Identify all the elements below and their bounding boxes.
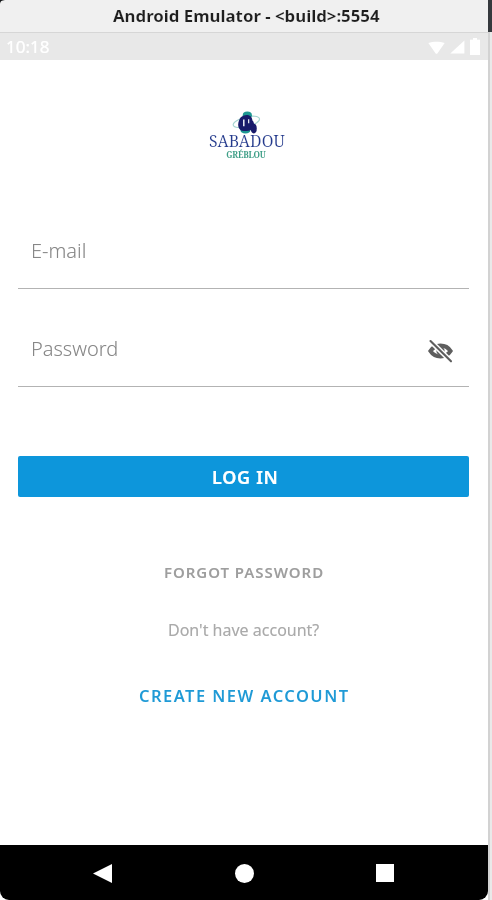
staticText: Password <box>31 335 119 362</box>
staticText: 10:18 <box>6 35 50 58</box>
staticText: CREATE NEW ACCOUNT <box>139 684 350 706</box>
button[interactable]: CREATE NEW ACCOUNT <box>0 683 488 706</box>
button[interactable]: LOG IN <box>18 456 469 497</box>
staticText: FORGOT PASSWORD <box>164 562 325 582</box>
staticText: Android Emulator - <build>:5554 <box>113 4 380 27</box>
button[interactable]: Back <box>78 849 126 897</box>
button[interactable]: Home <box>220 849 268 897</box>
staticText: GRÉBLOU <box>186 149 306 160</box>
button[interactable]: Show password <box>421 332 459 370</box>
staticText: LOG IN <box>212 465 279 490</box>
staticText: SABADOU <box>187 130 307 152</box>
button[interactable]: Password <box>18 334 469 386</box>
button[interactable]: E-mail <box>18 236 469 288</box>
button[interactable]: Recent apps <box>361 849 409 897</box>
staticText: E-mail <box>31 237 87 264</box>
staticText: Don't have account? <box>168 619 320 641</box>
button[interactable]: FORGOT PASSWORD <box>0 561 488 583</box>
